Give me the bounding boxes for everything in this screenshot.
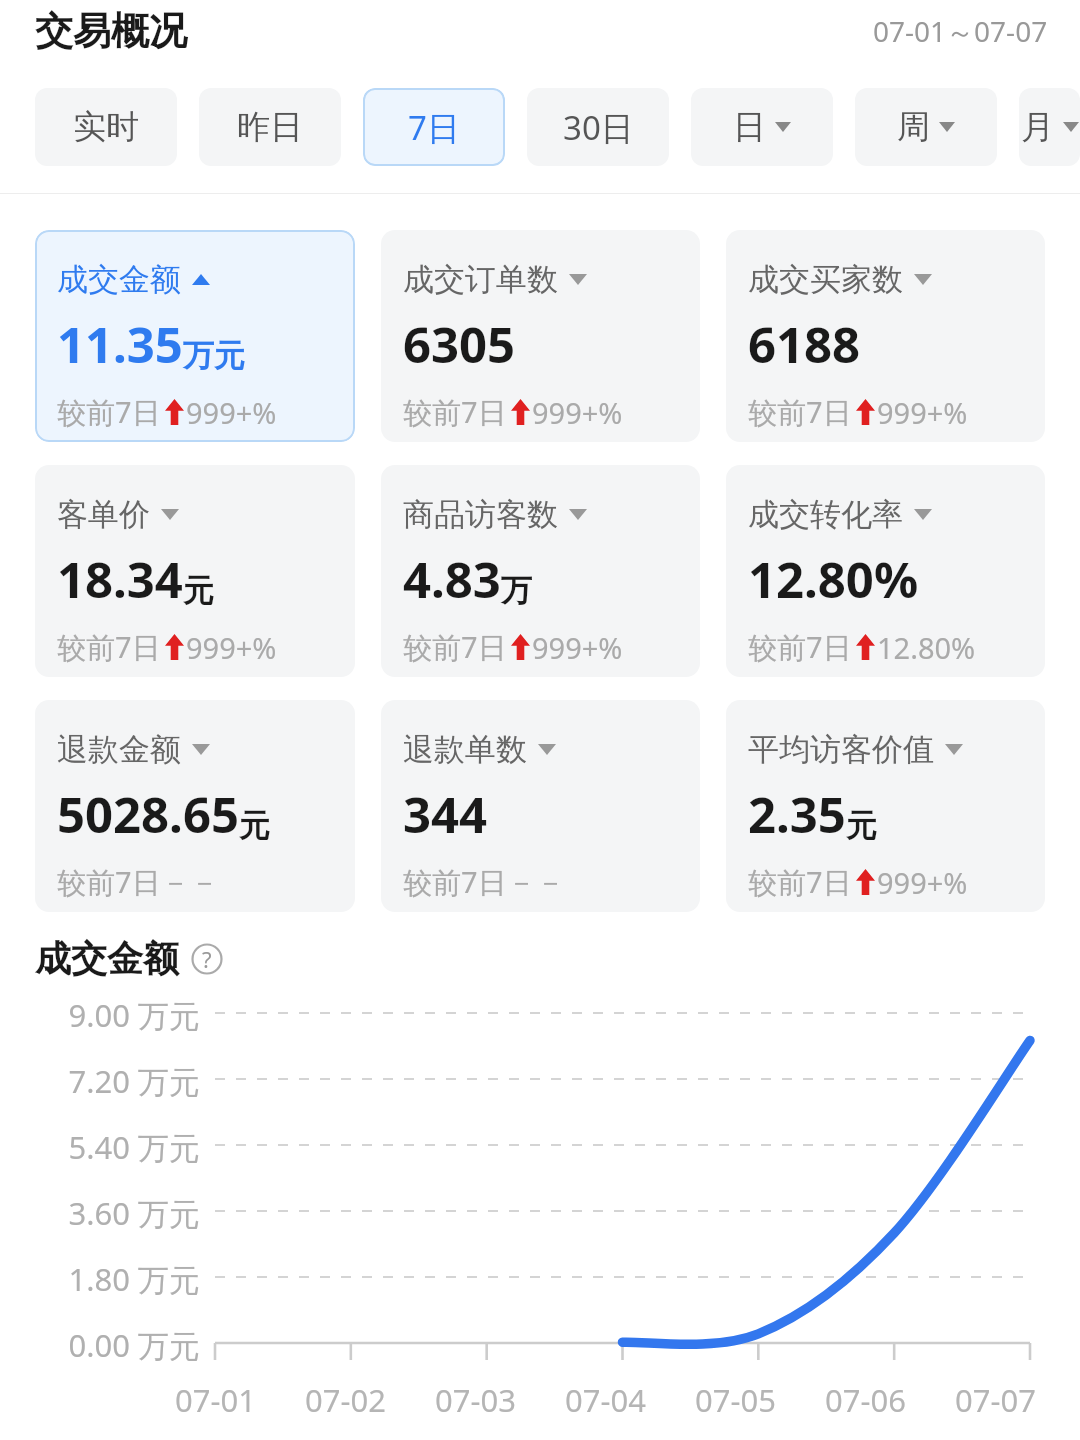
button[interactable]: 平均访客价值: [726, 700, 1045, 912]
staticText: 元: [846, 806, 877, 845]
staticText: 344: [403, 781, 488, 848]
staticText: 较前7日: [403, 627, 507, 667]
staticText: 平均访客价值: [748, 730, 934, 769]
staticText: 月: [1021, 106, 1054, 148]
staticText: 商品访客数: [403, 495, 558, 534]
button[interactable]: 日: [691, 88, 833, 166]
staticText: 交易概况: [35, 7, 187, 55]
staticText: 退款金额: [57, 730, 181, 769]
staticText: 较前7日: [403, 392, 507, 432]
staticText: 9.00 万元: [0, 994, 200, 1036]
staticText: 实时: [73, 106, 139, 148]
staticText: 999+%: [532, 393, 623, 432]
button[interactable]: 月: [1019, 88, 1080, 166]
button[interactable]: 退款单数: [381, 700, 700, 912]
staticText: 18.34: [57, 546, 183, 613]
staticText: 07-03: [435, 1379, 516, 1421]
staticText: 12.80%: [748, 546, 919, 613]
staticText: 较前7日: [57, 627, 161, 667]
staticText: 999+%: [186, 393, 277, 432]
staticText: 07-01: [175, 1379, 256, 1421]
button[interactable]: 成交转化率: [726, 465, 1045, 677]
staticText: 较前7日: [57, 862, 161, 902]
staticText: 5.40 万元: [0, 1126, 200, 1168]
button[interactable]: 退款金额: [35, 700, 355, 912]
staticText: 较前7日: [57, 392, 161, 432]
staticText: 6305: [403, 311, 516, 378]
staticText: 999+%: [877, 863, 968, 902]
staticText: 07-07: [955, 1379, 1036, 1421]
button[interactable]: 成交买家数: [726, 230, 1045, 442]
staticText: 日: [733, 106, 766, 148]
button[interactable]: 成交订单数: [381, 230, 700, 442]
staticText: 元: [183, 571, 214, 610]
staticText: 07-06: [825, 1379, 906, 1421]
staticText: 成交金额: [35, 936, 179, 981]
staticText: 5028.65: [57, 781, 239, 848]
staticText: －－: [161, 864, 219, 901]
staticText: 12.80%: [877, 628, 976, 667]
staticText: 昨日: [237, 106, 303, 148]
staticText: 7日: [408, 105, 460, 150]
button[interactable]: 成交金额: [35, 230, 355, 442]
button[interactable]: 商品访客数: [381, 465, 700, 677]
staticText: 999+%: [186, 628, 277, 667]
staticText: 7.20 万元: [0, 1060, 200, 1102]
staticText: 3.60 万元: [0, 1192, 200, 1234]
staticText: 较前7日: [748, 862, 852, 902]
staticText: 4.83: [403, 546, 501, 613]
staticText: 07-02: [305, 1379, 386, 1421]
staticText: 1.80 万元: [0, 1258, 200, 1300]
staticText: 成交转化率: [748, 495, 903, 534]
button[interactable]: 客单价: [35, 465, 355, 677]
button[interactable]: 7日: [363, 88, 505, 166]
staticText: 较前7日: [403, 862, 507, 902]
staticText: 07-01～07-07: [873, 12, 1048, 50]
staticText: 退款单数: [403, 730, 527, 769]
button[interactable]: 周: [855, 88, 997, 166]
button[interactable]: 实时: [35, 88, 177, 166]
button[interactable]: 30日: [527, 88, 669, 166]
staticText: 0.00 万元: [0, 1324, 200, 1366]
staticText: 07-05: [695, 1379, 776, 1421]
staticText: 成交买家数: [748, 260, 903, 299]
staticText: 999+%: [532, 628, 623, 667]
button[interactable]: 昨日: [199, 88, 341, 166]
staticText: 较前7日: [748, 392, 852, 432]
staticText: 万: [501, 571, 532, 610]
staticText: 较前7日: [748, 627, 852, 667]
staticText: 成交金额: [57, 260, 181, 299]
staticText: ?: [202, 944, 212, 974]
staticText: 成交订单数: [403, 260, 558, 299]
staticText: 999+%: [877, 393, 968, 432]
staticText: 周: [897, 106, 930, 148]
staticText: －－: [507, 864, 565, 901]
staticText: 11.35: [57, 311, 183, 378]
staticText: 30日: [563, 105, 634, 150]
staticText: 2.35: [748, 781, 846, 848]
staticText: 07-04: [565, 1379, 646, 1421]
staticText: 6188: [748, 311, 861, 378]
staticText: 元: [239, 806, 270, 845]
button[interactable]: 帮助说明: [191, 943, 223, 975]
staticText: 万元: [183, 336, 245, 375]
staticText: 客单价: [57, 495, 150, 534]
